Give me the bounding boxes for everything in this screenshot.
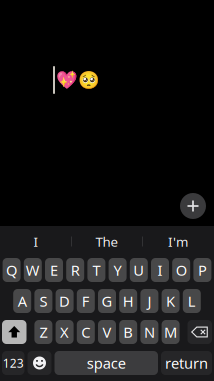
- staticText: Q: [6, 260, 17, 280]
- button[interactable]: T: [87, 258, 105, 282]
- button[interactable]: B: [119, 320, 137, 344]
- staticText: H: [123, 291, 134, 311]
- button[interactable]: H: [119, 289, 137, 313]
- staticText: M: [164, 322, 177, 342]
- staticText: I'm: [168, 233, 188, 250]
- staticText: S: [39, 291, 47, 311]
- staticText: return: [165, 353, 208, 373]
- button[interactable]: J: [140, 289, 158, 313]
- button[interactable]: More options: [180, 193, 206, 219]
- staticText: U: [133, 260, 144, 280]
- staticText: R: [71, 260, 80, 280]
- staticText: G: [101, 291, 112, 311]
- staticText: A: [18, 291, 27, 311]
- button[interactable]: D: [56, 289, 74, 313]
- staticText: L: [188, 291, 196, 311]
- button[interactable]: M: [162, 320, 180, 344]
- staticText: W: [26, 260, 40, 280]
- button[interactable]: Delete: [187, 320, 212, 344]
- button[interactable]: O: [172, 258, 190, 282]
- button[interactable]: I: [151, 258, 169, 282]
- button[interactable]: V: [98, 320, 116, 344]
- staticText: F: [82, 291, 90, 311]
- button[interactable]: W: [24, 258, 42, 282]
- staticText: D: [59, 291, 70, 311]
- staticText: I: [157, 260, 162, 280]
- button[interactable]: Shift: [2, 320, 26, 344]
- button[interactable]: space: [54, 351, 158, 375]
- staticText: X: [60, 322, 69, 342]
- staticText: Y: [114, 260, 122, 280]
- staticText: J: [147, 291, 151, 311]
- staticText: 123: [3, 355, 24, 371]
- button[interactable]: C: [77, 320, 95, 344]
- staticText: C: [81, 322, 90, 342]
- button[interactable]: Q: [3, 258, 21, 282]
- button[interactable]: G: [98, 289, 116, 313]
- staticText: E: [50, 260, 58, 280]
- button[interactable]: R: [66, 258, 84, 282]
- button[interactable]: U: [130, 258, 148, 282]
- button[interactable]: I'm: [143, 226, 213, 257]
- button[interactable]: S: [34, 289, 52, 313]
- button[interactable]: Y: [109, 258, 127, 282]
- button[interactable]: 123: [2, 351, 24, 375]
- button[interactable]: return: [161, 351, 212, 375]
- button[interactable]: Z: [34, 320, 52, 344]
- staticText: B: [123, 322, 133, 342]
- staticText: K: [166, 291, 175, 311]
- staticText: O: [176, 260, 187, 280]
- button[interactable]: I: [1, 226, 71, 257]
- staticText: Z: [39, 322, 47, 342]
- button[interactable]: K: [162, 289, 180, 313]
- button[interactable]: N: [140, 320, 158, 344]
- button[interactable]: X: [56, 320, 74, 344]
- button[interactable]: Emoji keyboard: [27, 351, 51, 375]
- staticText: I: [33, 233, 38, 250]
- staticText: space: [87, 353, 126, 373]
- button[interactable]: F: [77, 289, 95, 313]
- button[interactable]: The: [72, 226, 142, 257]
- button[interactable]: P: [193, 258, 211, 282]
- button[interactable]: A: [13, 289, 31, 313]
- staticText: P: [198, 260, 207, 280]
- staticText: T: [92, 260, 100, 280]
- staticText: N: [144, 322, 155, 342]
- staticText: 💖🥺: [56, 70, 100, 90]
- staticText: The: [95, 233, 118, 250]
- button[interactable]: L: [183, 289, 201, 313]
- button[interactable]: E: [45, 258, 63, 282]
- staticText: V: [102, 322, 111, 342]
